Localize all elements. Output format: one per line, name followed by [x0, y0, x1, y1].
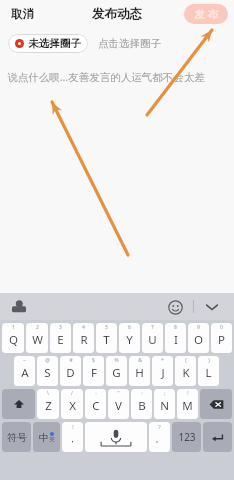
staticText: 点击选择圈子 [98, 37, 161, 50]
button[interactable]: * [152, 356, 173, 386]
staticText: ， [68, 433, 77, 444]
button[interactable]: 3 [50, 323, 71, 353]
staticText: ( [185, 357, 187, 364]
staticText: 8 [174, 324, 177, 331]
button[interactable]: / [61, 389, 83, 419]
staticText: D [66, 365, 75, 381]
button[interactable]: Shift [2, 389, 35, 419]
staticText: 1 [12, 324, 15, 331]
staticText: 未选择圈子 [28, 37, 81, 50]
staticText: A [21, 365, 29, 381]
button[interactable]: 未选择圈子 [8, 34, 88, 53]
button[interactable]: 0 [211, 323, 232, 353]
staticText: W [32, 332, 43, 348]
staticText: ~ [23, 357, 26, 364]
staticText: 5 [105, 324, 108, 331]
button[interactable]: ! [177, 389, 198, 419]
staticText: " [117, 390, 120, 397]
button[interactable]: 123 [172, 422, 201, 452]
button[interactable]: 点击选择圈子 [96, 35, 163, 52]
staticText: J [161, 365, 165, 381]
button[interactable]: 1 [2, 323, 24, 353]
staticText: Y [126, 332, 133, 348]
staticText: ; [164, 390, 166, 397]
staticText: 发 布 [194, 7, 218, 21]
button[interactable]: : [131, 389, 152, 419]
button[interactable]: & [129, 356, 150, 386]
button[interactable]: 取消 [6, 4, 39, 24]
staticText: I [174, 332, 178, 348]
staticText: U [148, 332, 157, 348]
button[interactable]: # [60, 356, 81, 386]
button[interactable]: ? [149, 422, 170, 452]
staticText: % [114, 357, 119, 364]
button[interactable]: - [85, 389, 106, 419]
button[interactable]: 发 布 [184, 4, 228, 24]
button[interactable]: 4 [73, 323, 94, 353]
button[interactable]: 7 [142, 323, 163, 353]
staticText: 发布动态 [92, 6, 142, 22]
staticText: T [103, 332, 110, 348]
staticText: M [182, 398, 193, 414]
staticText: R [80, 332, 88, 348]
staticText: F [91, 365, 97, 381]
staticText: 6 [128, 324, 131, 331]
staticText: 取消 [11, 7, 34, 21]
staticText: ? [158, 423, 161, 430]
button[interactable]: Switch input method [8, 296, 30, 318]
staticText: 4 [82, 324, 85, 331]
button[interactable]: $ [83, 356, 104, 386]
staticText: \ [47, 390, 49, 397]
staticText: X [69, 398, 76, 414]
button[interactable]: % [106, 356, 127, 386]
staticText: 2 [36, 324, 39, 331]
staticText: E [57, 332, 64, 348]
staticText: S [44, 365, 51, 381]
staticText: & [138, 357, 142, 364]
button[interactable]: ) [198, 356, 219, 386]
staticText: 说点什么呗…友善发言的人运气都不会太差 [7, 70, 205, 84]
staticText: ! [72, 423, 74, 430]
staticText: B [138, 398, 146, 414]
button[interactable]: ( [175, 356, 196, 386]
staticText: L [205, 365, 212, 381]
staticText: 英 [49, 436, 55, 443]
staticText: 9 [197, 324, 200, 331]
staticText: O [194, 332, 203, 348]
staticText: 3 [59, 324, 62, 331]
staticText: ) [208, 357, 210, 364]
staticText: V [115, 398, 122, 414]
staticText: $ [92, 357, 95, 364]
staticText: 123 [178, 430, 196, 444]
staticText: 0 [220, 324, 223, 331]
staticText: G [112, 365, 121, 381]
button[interactable]: Hide keyboard [200, 295, 224, 319]
button[interactable]: 符号 [2, 422, 31, 452]
button[interactable]: ; [154, 389, 175, 419]
button[interactable]: 6 [119, 323, 140, 353]
button[interactable]: @ [37, 356, 58, 386]
staticText: K [182, 365, 190, 381]
button[interactable] [0, 58, 234, 293]
button[interactable]: Space [85, 422, 147, 452]
button[interactable]: Backspace [200, 389, 232, 419]
button[interactable]: 5 [96, 323, 117, 353]
staticText: P [218, 332, 225, 348]
button[interactable]: 9 [188, 323, 209, 353]
button[interactable]: Emoji [163, 295, 187, 319]
button[interactable]: 2 [26, 323, 48, 353]
button[interactable]: ~ [14, 356, 35, 386]
button[interactable]: Enter [203, 422, 232, 452]
button[interactable]: ! [62, 422, 83, 452]
button[interactable]: 中 [33, 422, 60, 452]
staticText: H [135, 365, 144, 381]
button[interactable]: 8 [165, 323, 186, 353]
staticText: Q [9, 332, 18, 348]
staticText: # [69, 357, 73, 364]
staticText: 7 [151, 324, 154, 331]
staticText: - [95, 390, 97, 397]
button[interactable]: \ [37, 389, 59, 419]
staticText: C [92, 398, 100, 414]
staticText: @ [45, 357, 50, 364]
button[interactable]: " [108, 389, 129, 419]
